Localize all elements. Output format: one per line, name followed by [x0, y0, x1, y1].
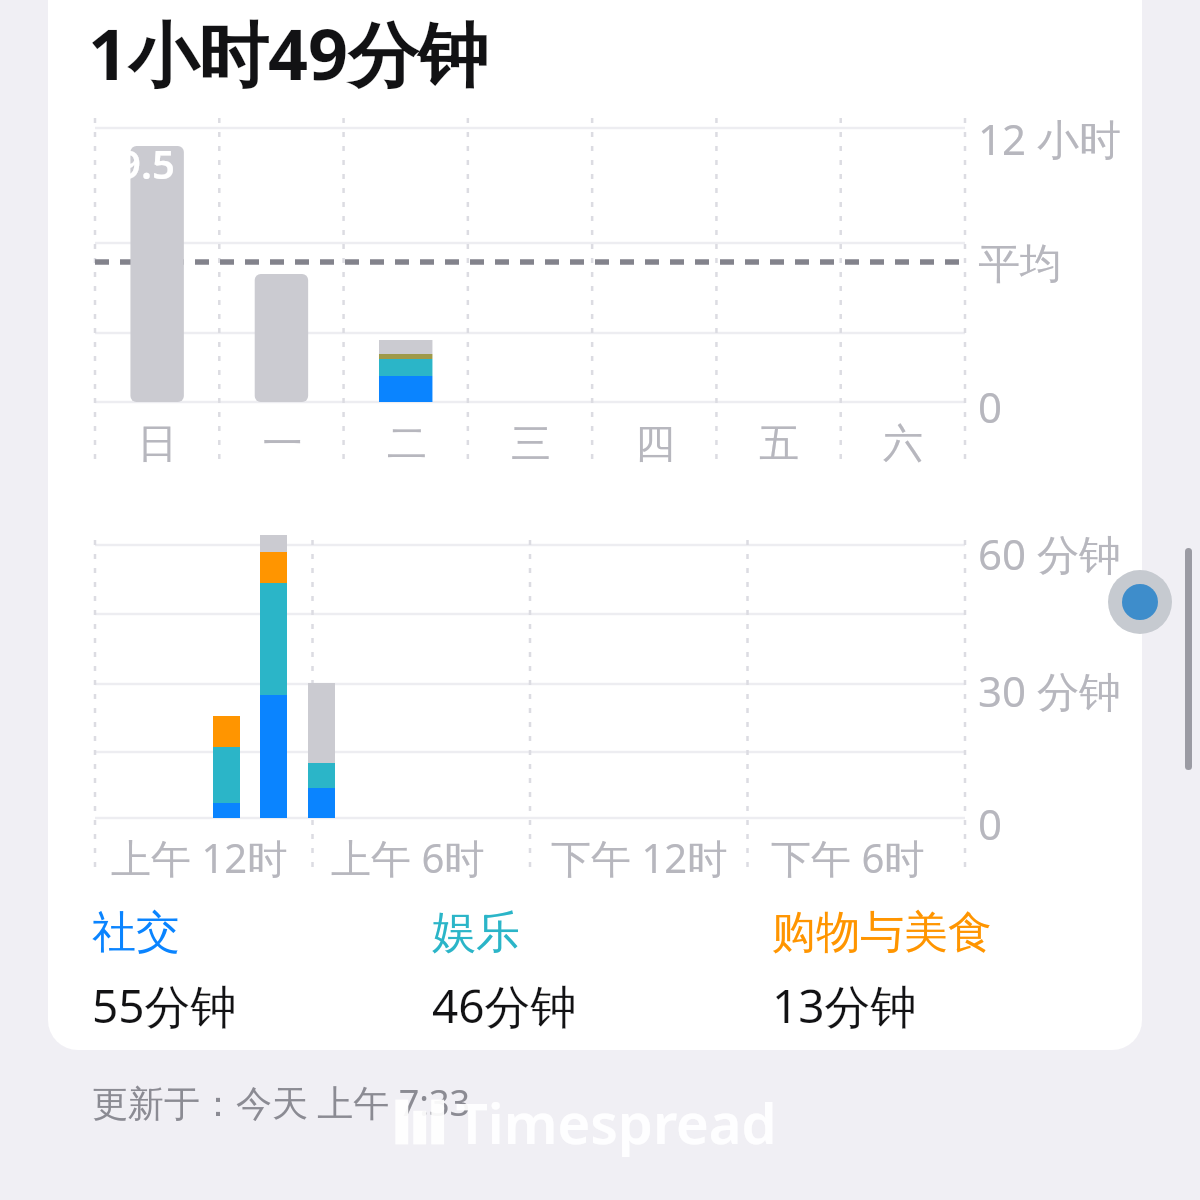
staticText: 社交 [92, 905, 180, 960]
staticText: 更新于：今天 上午 7:33 [92, 1078, 471, 1127]
staticText: 二 [345, 418, 469, 468]
button[interactable]: Page indicator [1108, 570, 1172, 634]
staticText: 平均 [978, 238, 1062, 291]
staticText: 30 分钟 [978, 662, 1121, 719]
staticText: 60 分钟 [978, 525, 1121, 582]
staticText: 46分钟 [432, 974, 577, 1037]
staticText: 娱乐 [432, 905, 520, 960]
staticText: 六 [841, 418, 965, 468]
staticText: 下午 6时 [771, 830, 975, 885]
staticText: 五 [717, 418, 841, 468]
staticText: 55分钟 [92, 974, 237, 1037]
staticText: 下午 12时 [551, 830, 755, 885]
staticText: Timespread [456, 1084, 777, 1160]
button[interactable]: 娱乐 [432, 905, 772, 1037]
staticText: 1小时49分钟 [88, 5, 489, 101]
staticText: 12 小时 [978, 110, 1121, 167]
staticText: 一 [220, 418, 345, 468]
staticText: 0 [978, 378, 1003, 435]
staticText: 四 [593, 418, 717, 468]
staticText: 上午 6时 [331, 830, 535, 885]
staticText: 上午 12时 [111, 830, 315, 885]
staticText: 13分钟 [772, 974, 917, 1037]
staticText: 日 [95, 418, 220, 468]
staticText: 购物与美食 [772, 905, 992, 960]
staticText: 三 [469, 418, 593, 468]
button[interactable]: 购物与美食 [772, 905, 1112, 1037]
staticText: 0 [978, 795, 1003, 852]
button[interactable]: 社交 [92, 905, 432, 1037]
staticText: 9.5 [118, 136, 175, 190]
